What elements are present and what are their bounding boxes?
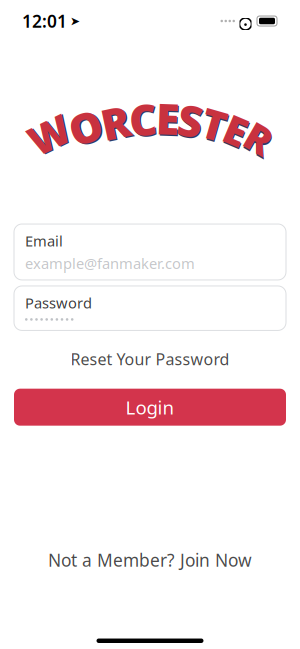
staticText: Login — [125, 395, 174, 420]
staticText: W — [28, 107, 70, 160]
staticText: R — [102, 95, 131, 152]
staticText: R — [247, 113, 273, 165]
staticText: E — [225, 103, 247, 156]
staticText: C — [129, 91, 157, 147]
staticText: example@fanmaker.com — [25, 253, 195, 273]
staticText: Email — [25, 231, 63, 250]
staticText: E — [157, 91, 180, 148]
button[interactable]: Reset Your Password — [58, 344, 241, 374]
staticText: Not a Member? Join Now — [48, 548, 252, 571]
staticText: 12:01 — [22, 9, 67, 32]
staticText: T — [203, 98, 227, 153]
staticText: W — [29, 109, 71, 162]
staticText: O — [69, 100, 102, 154]
button[interactable]: Email — [14, 224, 286, 280]
staticText: E — [226, 105, 248, 158]
staticText: Password — [25, 293, 92, 312]
button[interactable]: Not a Member? Join Now — [34, 543, 266, 576]
staticText: Reset Your Password — [70, 348, 229, 370]
staticText: S — [179, 93, 204, 150]
button[interactable]: Login — [14, 389, 286, 426]
staticText: R — [246, 112, 272, 164]
staticText: T — [202, 97, 226, 151]
button[interactable]: Password — [14, 286, 286, 330]
staticText: C — [130, 92, 158, 149]
staticText: S — [178, 92, 203, 148]
staticText: R — [101, 94, 130, 150]
staticText: O — [70, 101, 103, 156]
staticText: ➤ — [70, 14, 80, 28]
staticText: E — [156, 90, 179, 146]
